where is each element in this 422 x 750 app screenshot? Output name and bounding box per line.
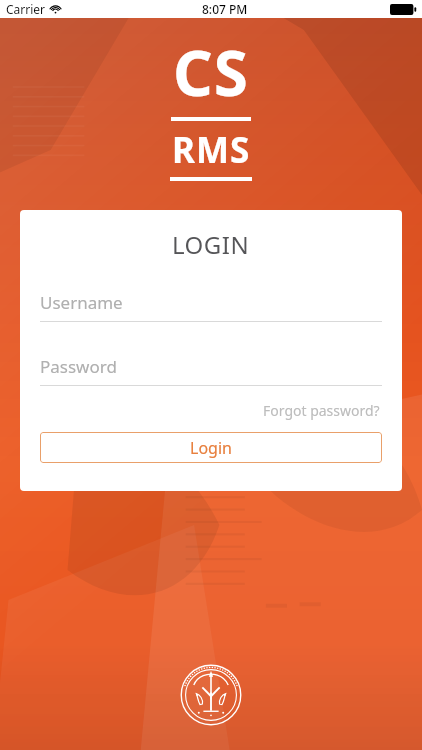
button[interactable]: Password — [40, 355, 382, 386]
button[interactable]: Login — [40, 432, 382, 463]
staticText: Login — [190, 437, 232, 459]
other: Uttar Pradesh Government emblem — [180, 664, 242, 726]
button[interactable]: Forgot password? — [261, 399, 382, 422]
staticText: Username — [40, 291, 123, 314]
staticText: RMS — [172, 126, 251, 174]
staticText: 8:07 PM — [202, 1, 248, 17]
staticText: LOGIN — [172, 228, 250, 261]
staticText: Forgot password? — [263, 401, 380, 420]
button[interactable]: Username — [40, 291, 382, 322]
staticText: Carrier — [6, 1, 46, 17]
staticText: Password — [40, 355, 117, 378]
staticText: CS — [173, 30, 249, 114]
